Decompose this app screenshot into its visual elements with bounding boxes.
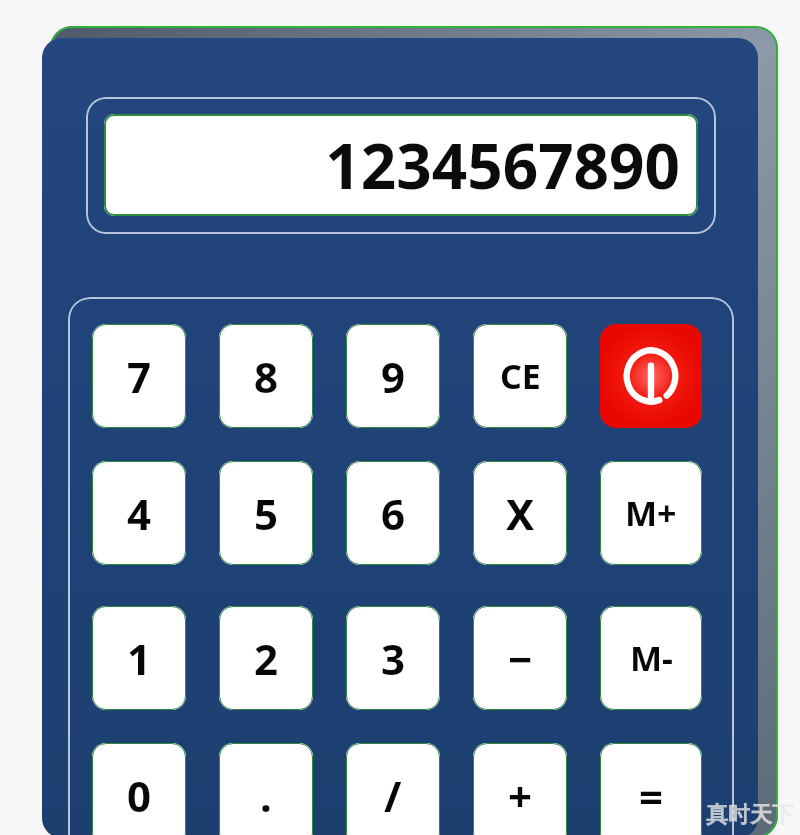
staticText: 0	[127, 767, 152, 824]
staticText: /	[384, 767, 402, 824]
button[interactable]: Power	[600, 324, 702, 428]
button[interactable]: +	[473, 743, 567, 835]
staticText: 2	[254, 630, 279, 687]
button[interactable]: 6	[346, 461, 440, 565]
staticText: 7	[127, 348, 152, 405]
staticText: M-	[630, 635, 673, 681]
button[interactable]: 1	[92, 606, 186, 710]
button[interactable]: 4	[92, 461, 186, 565]
staticText: 9	[381, 348, 406, 405]
staticText: 1	[127, 630, 152, 687]
staticText: =	[639, 767, 664, 824]
button[interactable]: 0	[92, 743, 186, 835]
button[interactable]: 3	[346, 606, 440, 710]
button[interactable]: M-	[600, 606, 702, 710]
staticText: X	[506, 485, 535, 542]
button[interactable]: 7	[92, 324, 186, 428]
button[interactable]: 1234567890	[104, 114, 698, 216]
button[interactable]: .	[219, 743, 313, 835]
staticText: CE	[500, 353, 541, 399]
button[interactable]: /	[346, 743, 440, 835]
staticText: +	[508, 767, 533, 824]
button[interactable]: X	[473, 461, 567, 565]
staticText: −	[508, 630, 533, 687]
staticText: 4	[127, 485, 152, 542]
button[interactable]: CE	[473, 324, 567, 428]
button[interactable]: 9	[346, 324, 440, 428]
staticText: 5	[254, 485, 279, 542]
button[interactable]: 8	[219, 324, 313, 428]
button[interactable]: M+	[600, 461, 702, 565]
staticText: 1234567890	[325, 123, 680, 207]
button[interactable]: 5	[219, 461, 313, 565]
button[interactable]: −	[473, 606, 567, 710]
button[interactable]: 2	[219, 606, 313, 710]
staticText: 6	[381, 485, 406, 542]
staticText: M+	[625, 490, 677, 536]
staticText: .	[260, 767, 272, 824]
staticText: 8	[254, 348, 279, 405]
button[interactable]: =	[600, 743, 702, 835]
staticText: 真时天下	[706, 801, 794, 829]
staticText: 3	[381, 630, 406, 687]
